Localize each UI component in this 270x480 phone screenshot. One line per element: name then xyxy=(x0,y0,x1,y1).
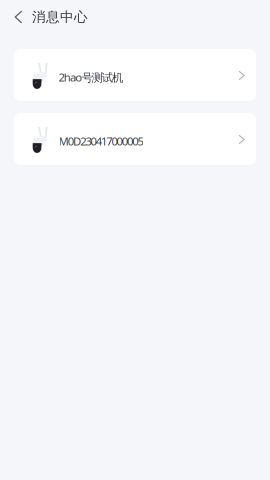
button[interactable]: 2hao号测试机 xyxy=(14,49,256,101)
staticText: M0D230417000005 xyxy=(59,133,143,149)
button[interactable]: M0D230417000005 xyxy=(14,113,256,165)
staticText: 2hao号测试机 xyxy=(59,69,123,85)
staticText: 消息中心 xyxy=(32,8,88,25)
button[interactable]: Back xyxy=(0,4,32,29)
